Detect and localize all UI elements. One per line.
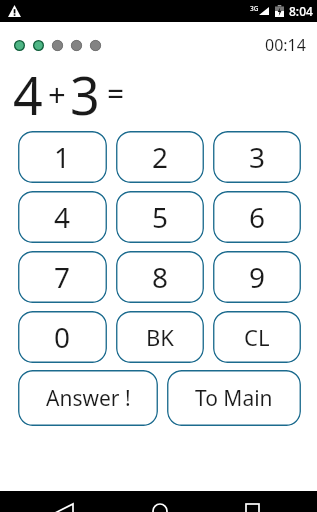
button[interactable]: 9 [213,251,301,303]
button[interactable]: 7 [18,251,107,303]
button[interactable]: Home [137,491,183,512]
staticText: 8 [152,258,169,296]
staticText: 6 [249,198,266,236]
staticText: CL [244,322,270,352]
staticText: 7 [54,258,71,296]
staticText: 5 [152,198,169,236]
staticText: + [48,73,66,115]
staticText: To Main [195,384,273,413]
staticText: 3 [70,59,100,130]
button[interactable]: 0 [18,311,107,363]
staticText: 3G [250,4,259,13]
staticText: 4 [54,198,71,236]
staticText: 4 [13,59,43,130]
staticText: 3 [249,138,266,176]
button[interactable]: Recents [230,491,276,512]
button[interactable]: 2 [116,131,204,183]
staticText: = [107,73,125,114]
button[interactable]: Answer ! [18,370,158,426]
button[interactable]: 6 [213,191,301,243]
staticText: 00:14 [265,34,306,56]
staticText: 8:04 [289,3,313,19]
button[interactable]: To Main [167,370,301,426]
button[interactable]: BK [116,311,204,363]
staticText: 1 [54,138,71,176]
button[interactable]: 4 [18,191,107,243]
staticText: 0 [54,318,71,356]
button[interactable]: 1 [18,131,107,183]
staticText: BK [146,322,174,352]
button[interactable]: 3 [213,131,301,183]
staticText: Answer ! [46,384,131,413]
staticText: 2 [152,138,169,176]
button[interactable]: CL [213,311,301,363]
button[interactable]: 5 [116,191,204,243]
button[interactable]: 8 [116,251,204,303]
button[interactable]: Back [41,491,87,512]
staticText: 9 [249,258,266,296]
